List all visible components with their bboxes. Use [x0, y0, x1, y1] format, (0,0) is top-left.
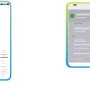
- button[interactable]: [0, 0, 15, 2]
- button[interactable]: [0, 0, 32, 12]
- button[interactable]: [0, 0, 17, 2]
